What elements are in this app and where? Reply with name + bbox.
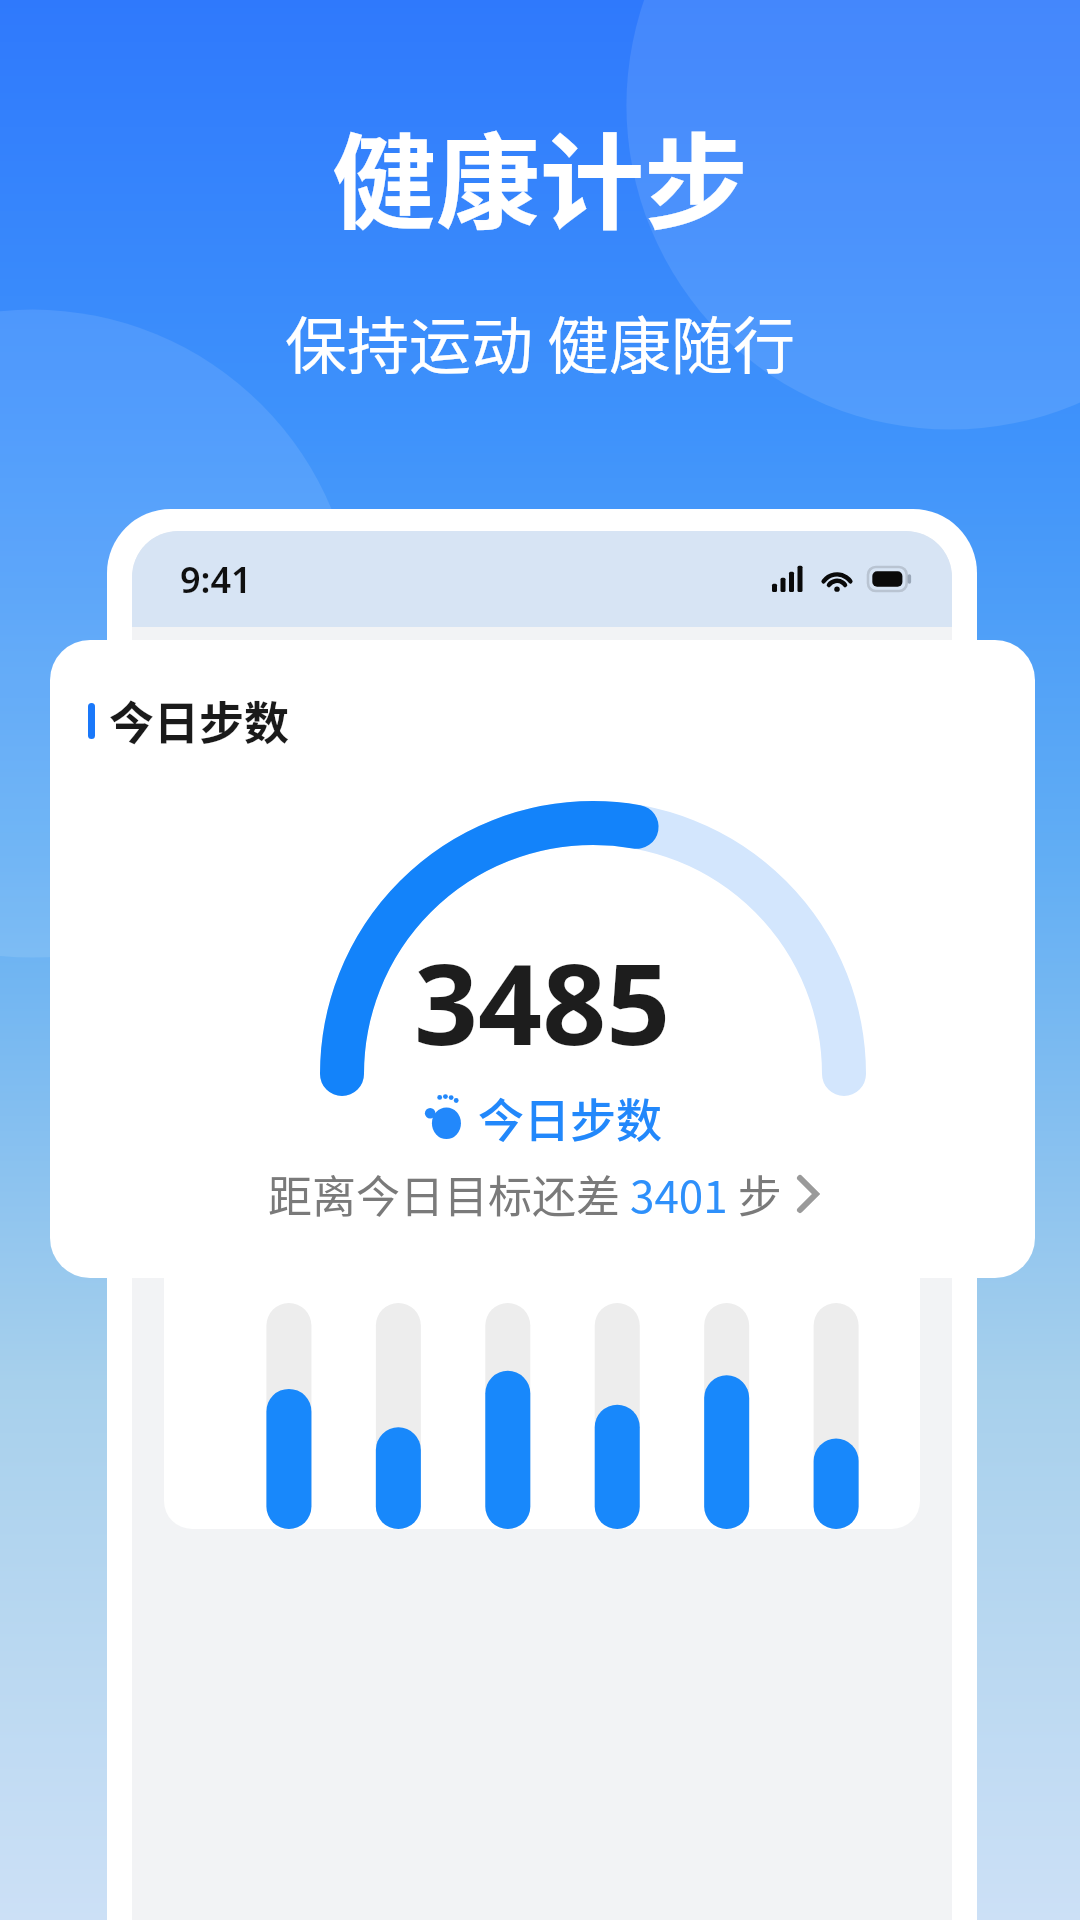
staticText: 今日步数: [109, 688, 290, 753]
staticText: 232: [585, 989, 685, 1065]
staticText: 本周步数统计: [200, 1133, 489, 1203]
button[interactable]: 今日行程: [164, 887, 529, 1065]
staticText: 3485: [414, 925, 671, 1078]
staticText: 距离今日目标还差: [268, 1162, 630, 1226]
staticText: 今日步数: [478, 1084, 662, 1151]
staticText: 公里: [320, 1013, 385, 1059]
staticText: 保持运动 健康随行: [285, 297, 795, 387]
staticText: 健康计步: [332, 100, 749, 251]
button[interactable]: 运动消耗: [555, 887, 920, 1065]
staticText: 3401: [630, 1162, 728, 1226]
staticText: 今日行程: [212, 913, 357, 965]
button[interactable]: 距离今日目标还差: [268, 1162, 818, 1226]
staticText: 步: [728, 1162, 782, 1226]
staticText: 9:41: [180, 555, 252, 604]
